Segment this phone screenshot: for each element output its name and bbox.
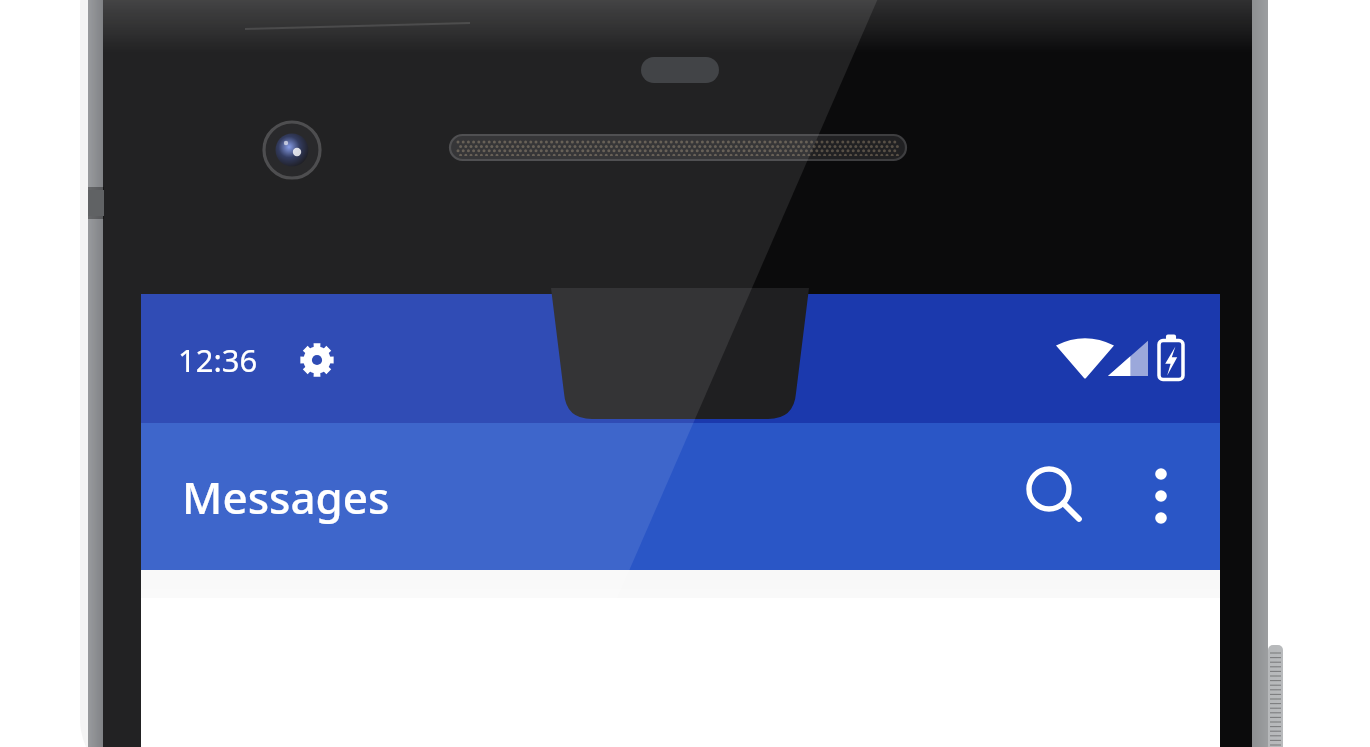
button[interactable]: Mobile signal xyxy=(1108,337,1152,383)
button[interactable]: 12:36 xyxy=(178,337,278,383)
staticText: 12:36 xyxy=(178,339,258,381)
button[interactable]: Wi-Fi xyxy=(1056,337,1114,383)
button[interactable]: Messages xyxy=(182,466,602,528)
button[interactable]: Power xyxy=(1264,643,1286,747)
staticText: Messages xyxy=(182,467,390,527)
button[interactable]: More options xyxy=(1118,450,1206,542)
button[interactable]: Battery charging xyxy=(1152,333,1192,387)
button[interactable]: Settings xyxy=(295,338,339,382)
button[interactable]: Search xyxy=(1006,450,1096,542)
